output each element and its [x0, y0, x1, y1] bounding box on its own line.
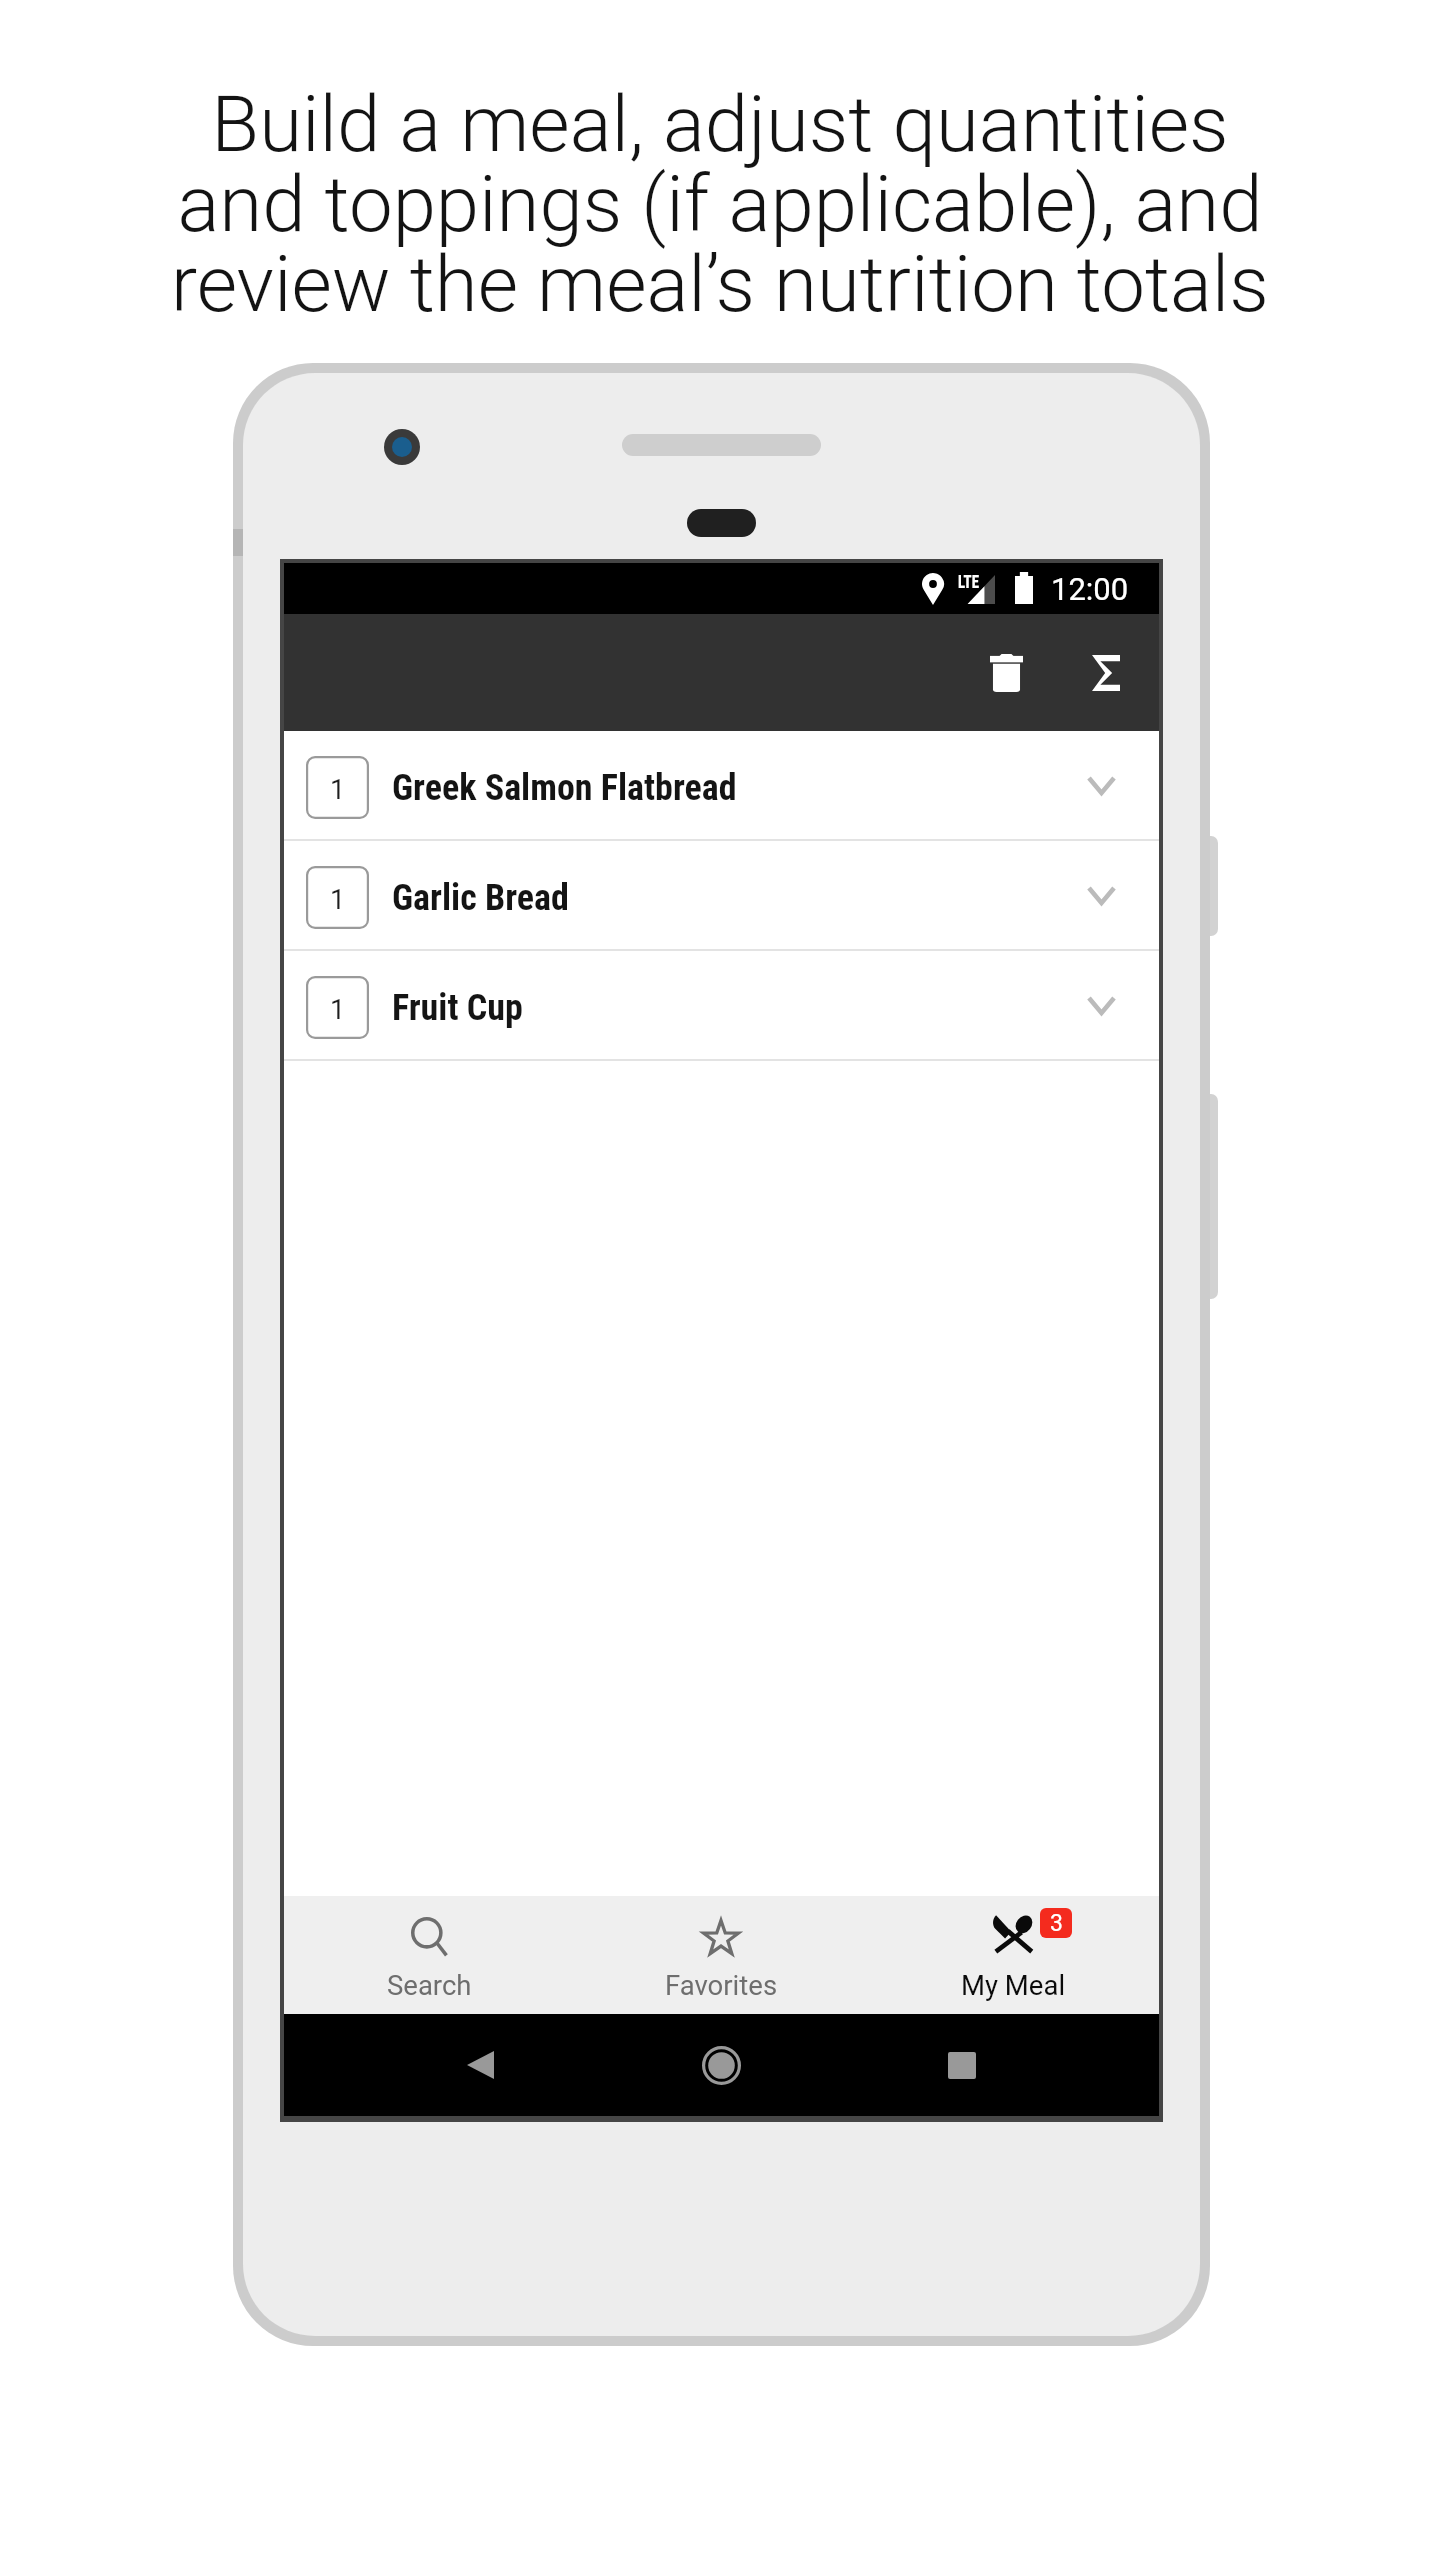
staticText: Fruit Cup [392, 987, 523, 1029]
staticText: 12:00 [1051, 571, 1129, 607]
button[interactable]: Back [462, 2048, 498, 2082]
staticText: LTE [958, 570, 979, 592]
button[interactable]: Home [701, 2045, 741, 2085]
button[interactable]: 1 [284, 951, 1159, 1061]
staticText: 1 [330, 774, 346, 806]
staticText: Garlic Bread [392, 877, 569, 919]
staticText: Favorites [665, 1969, 778, 2001]
staticText: 3 [1050, 1910, 1063, 1937]
button[interactable]: 3 [867, 1896, 1159, 2014]
staticText: 1 [330, 994, 346, 1026]
button[interactable]: Recent apps [944, 2048, 980, 2082]
button[interactable]: Favorites [575, 1896, 867, 2014]
button[interactable]: 1 [284, 841, 1159, 951]
staticText: Search [387, 1969, 472, 2001]
button[interactable]: Delete meal [956, 623, 1056, 723]
staticText: 1 [330, 884, 346, 916]
button[interactable]: 1 [284, 731, 1159, 841]
staticText: My Meal [961, 1969, 1066, 2001]
staticText: Build a meal, adjust quantities and topp… [0, 79, 1440, 330]
button[interactable]: Search [284, 1896, 575, 2014]
button[interactable]: Nutrition totals [1056, 623, 1156, 723]
staticText: Greek Salmon Flatbread [392, 767, 737, 809]
